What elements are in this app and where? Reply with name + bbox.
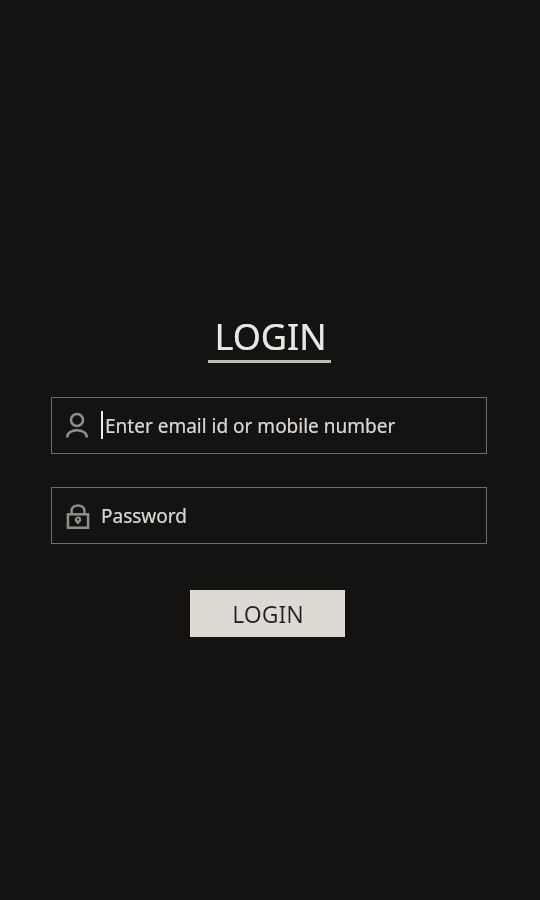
staticText: Enter email id or mobile number (105, 413, 396, 439)
button[interactable]: LOGIN (190, 590, 345, 637)
staticText: Password (101, 503, 187, 529)
button[interactable]: Enter email id or mobile number (51, 397, 487, 454)
button[interactable]: Password (51, 487, 487, 544)
staticText: LOGIN (232, 598, 304, 629)
staticText: LOGIN (214, 312, 327, 356)
